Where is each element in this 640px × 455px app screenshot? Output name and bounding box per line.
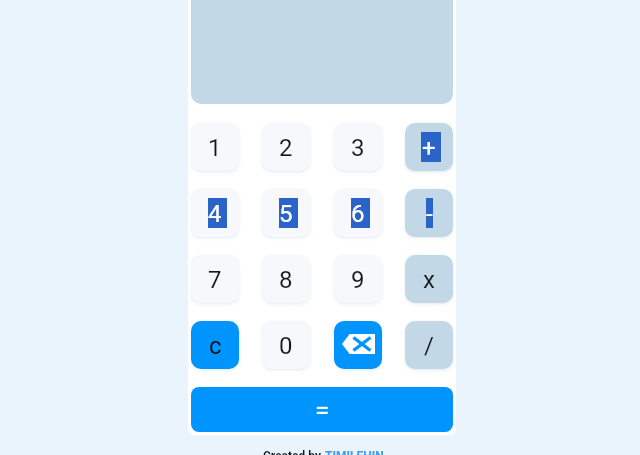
button[interactable]: 5 — [262, 189, 310, 237]
button[interactable]: + — [405, 123, 453, 171]
staticText: 3 — [351, 134, 365, 162]
staticText: + — [422, 134, 436, 162]
staticText: 1 — [208, 134, 222, 162]
staticText: c — [209, 332, 222, 360]
button[interactable]: c — [191, 321, 239, 369]
button[interactable]: 6 — [334, 189, 382, 237]
button[interactable]: = — [191, 387, 453, 432]
staticText: = — [315, 395, 330, 425]
staticText: 6 — [351, 200, 365, 228]
staticText: 4 — [208, 200, 222, 228]
staticText: 5 — [279, 200, 293, 228]
staticText: - — [426, 200, 433, 228]
button[interactable]: / — [405, 321, 453, 369]
button[interactable]: 0 — [262, 321, 310, 369]
button[interactable]: - — [405, 189, 453, 237]
button[interactable]: 2 — [262, 123, 310, 171]
staticText: Created by — [263, 449, 325, 455]
staticText: 0 — [279, 332, 293, 360]
button[interactable]: Backspace — [334, 321, 382, 369]
button[interactable]: 7 — [191, 255, 239, 303]
staticText: TIMILEHIN — [325, 449, 384, 455]
staticText: 2 — [279, 134, 293, 162]
staticText: 9 — [351, 266, 365, 294]
staticText: / — [424, 332, 434, 360]
button[interactable]: 3 — [334, 123, 382, 171]
button[interactable]: 4 — [191, 189, 239, 237]
staticText: 8 — [279, 266, 293, 294]
staticText: x — [423, 266, 435, 294]
button[interactable]: x — [405, 255, 453, 303]
staticText: 7 — [208, 266, 222, 294]
button[interactable]: 9 — [334, 255, 382, 303]
button[interactable]: 1 — [191, 123, 239, 171]
button[interactable]: 8 — [262, 255, 310, 303]
